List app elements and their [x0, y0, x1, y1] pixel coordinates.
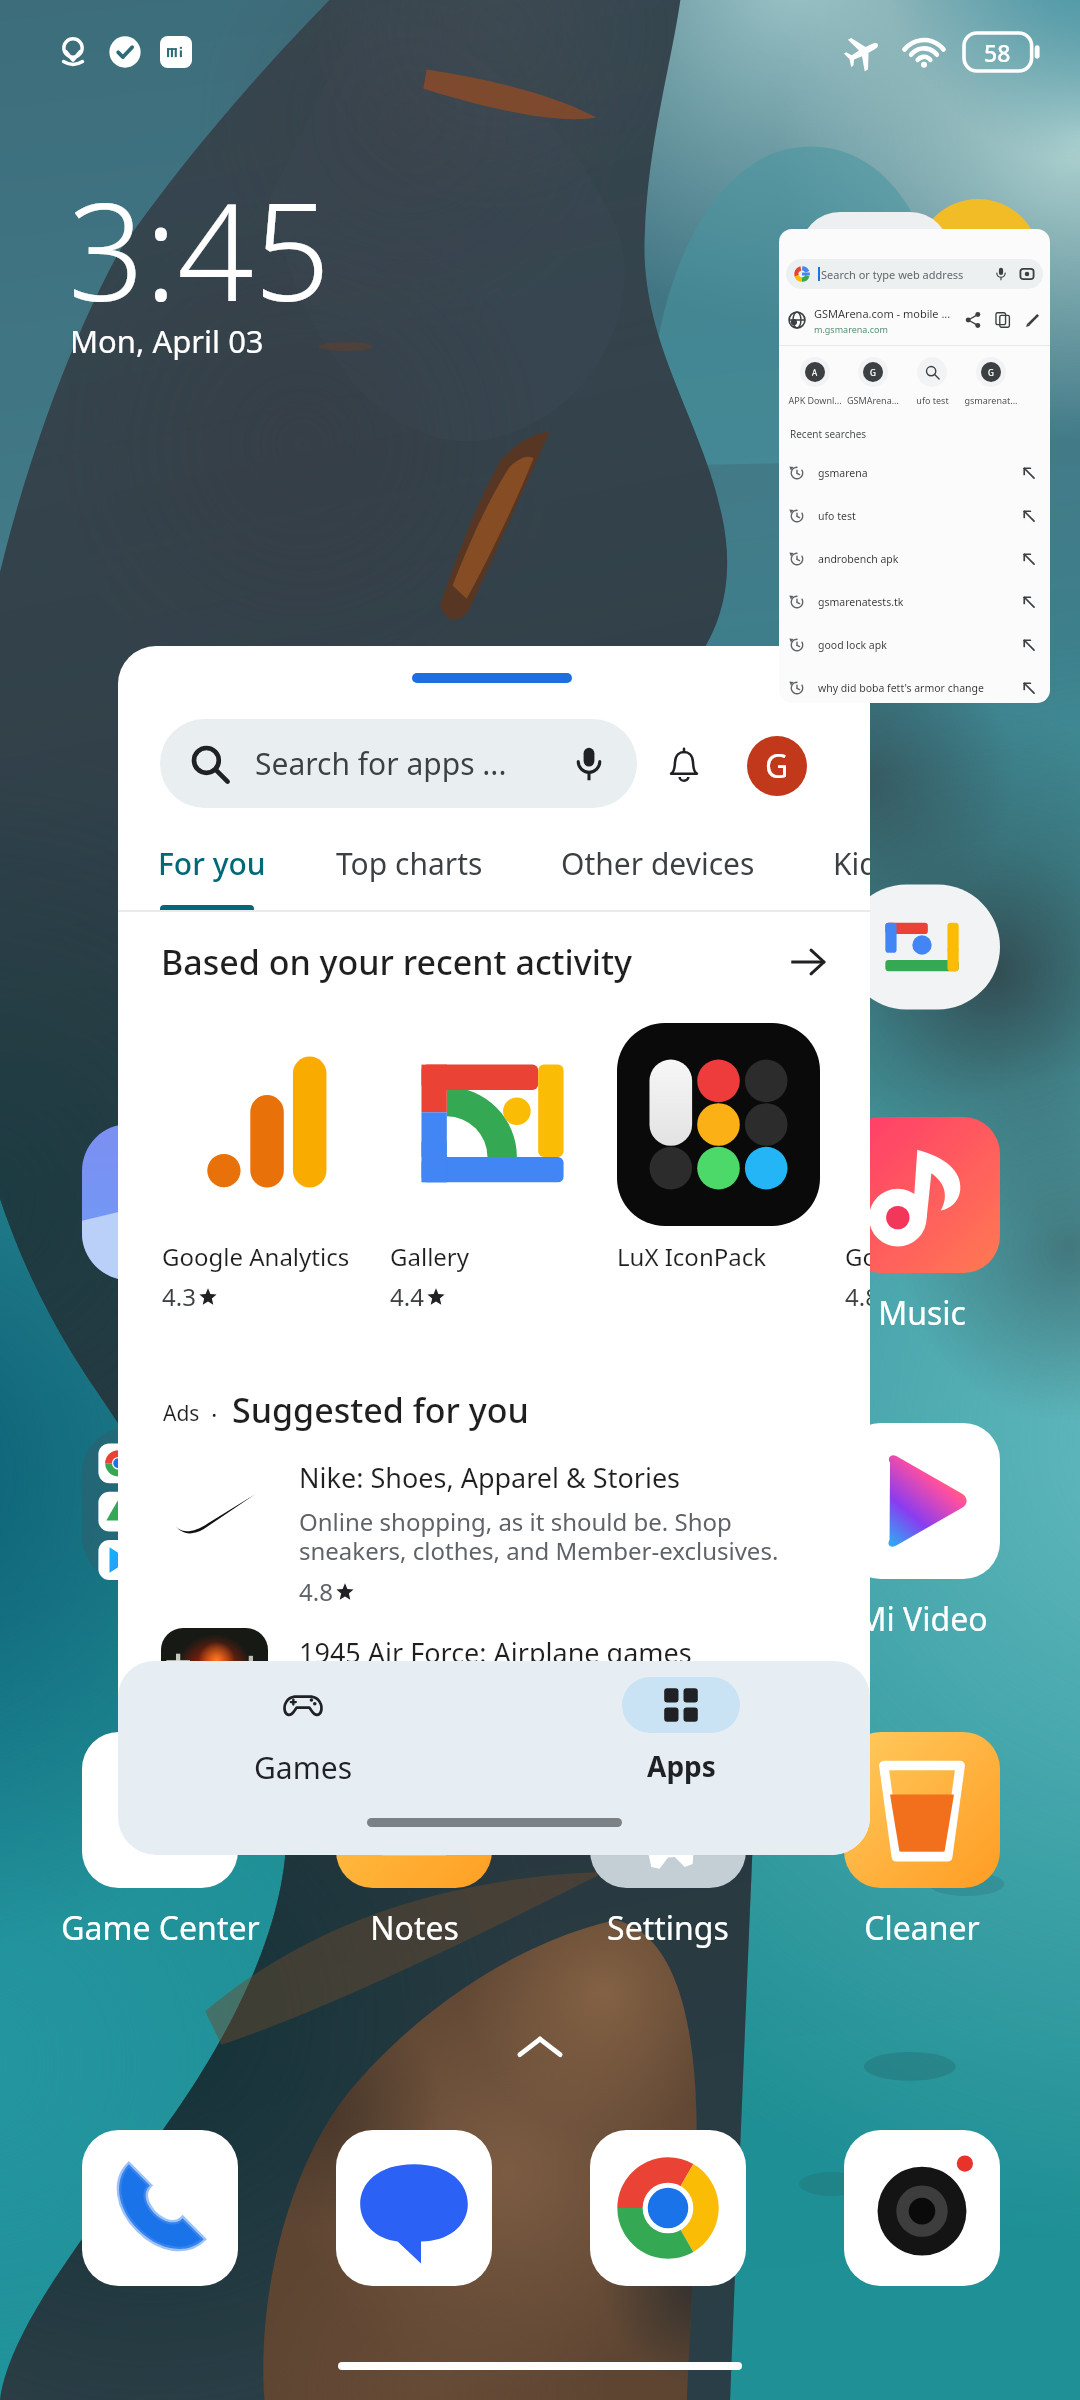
staticText: G — [765, 744, 789, 788]
staticText: gsmarenatests.tk — [818, 595, 904, 609]
button[interactable]: Share — [965, 312, 981, 328]
staticText: Games — [254, 1747, 353, 1788]
button[interactable]: Nike: Shoes, Apparel & Stories — [161, 1459, 827, 1608]
staticText: Mi Video — [857, 1597, 988, 1641]
staticText: G — [988, 367, 994, 378]
button[interactable]: Game Center — [45, 1732, 275, 1950]
staticText: Search or type web address — [821, 267, 964, 282]
button[interactable]: Edit — [1025, 312, 1041, 328]
staticText: good lock apk — [818, 638, 887, 652]
staticText: Ads — [163, 1399, 200, 1428]
button[interactable]: Cleaner — [807, 1732, 1037, 1950]
button[interactable]: G — [842, 357, 904, 406]
staticText: Recent searches — [790, 427, 867, 441]
staticText: Google Analytics — [162, 1240, 350, 1273]
staticText: Top charts — [336, 843, 483, 884]
button[interactable]: Search for apps ... — [160, 719, 637, 808]
button[interactable]: Based on your recent activity — [161, 934, 827, 990]
staticText: G — [870, 367, 876, 378]
staticText: Notes — [370, 1906, 459, 1950]
button[interactable]: gsmarena — [789, 451, 1036, 494]
staticText: Nike: Shoes, Apparel & Stories — [299, 1459, 681, 1496]
button[interactable]: Go — [845, 1023, 870, 1313]
button[interactable]: Gallery — [390, 1023, 593, 1313]
staticText: why did boba fett's armor change — [818, 681, 984, 695]
button[interactable]: LuX IconPack — [617, 1023, 820, 1273]
staticText: 3:45 — [68, 158, 331, 341]
staticText: Music — [878, 1291, 966, 1335]
button[interactable] — [45, 1427, 275, 1583]
staticText: GSMArena.com - mobile ... — [814, 306, 951, 321]
button[interactable]: App — [916, 199, 1040, 323]
staticText: 4.4 — [390, 1280, 424, 1313]
staticText: For you — [158, 843, 266, 884]
button[interactable] — [844, 2130, 1000, 2286]
button[interactable]: Account — [747, 736, 807, 796]
button[interactable]: Copy link — [995, 312, 1011, 328]
button[interactable]: gsmarenatests.tk — [789, 580, 1036, 623]
button[interactable]: Kid — [819, 823, 870, 903]
staticText: gsmarena — [818, 466, 868, 480]
button[interactable]: Google Analytics — [162, 1023, 365, 1313]
button[interactable]: good lock apk — [789, 623, 1036, 666]
button[interactable]: why did boba fett's armor change — [789, 666, 1036, 703]
button[interactable]: Games — [213, 1677, 393, 1788]
button[interactable] — [45, 1124, 275, 1280]
staticText: m.gsmarena.com — [814, 323, 888, 335]
staticText: 4.3 — [162, 1280, 196, 1313]
staticText: androbench apk — [818, 552, 899, 566]
staticText: 1945 Air Force: Airplane games — [299, 1634, 692, 1671]
button[interactable]: Notifications — [666, 747, 702, 783]
staticText: A — [812, 367, 818, 378]
staticText: APK Downl... — [788, 394, 842, 406]
button[interactable] — [590, 2130, 746, 2286]
staticText: Online shopping, as it should be. Shop s… — [299, 1505, 779, 1567]
staticText: Go — [845, 1240, 870, 1273]
staticText: gsmarenat... — [964, 394, 1018, 406]
button[interactable] — [336, 2130, 492, 2286]
button[interactable]: Music — [807, 1117, 1037, 1335]
staticText: Other devices — [561, 843, 755, 884]
button[interactable]: Settings — [553, 1732, 783, 1950]
staticText: ufo test — [916, 394, 949, 406]
button[interactable]: Top charts — [322, 823, 497, 903]
staticText: · — [211, 1398, 218, 1431]
button[interactable]: A — [784, 357, 846, 406]
staticText: Based on your recent activity — [161, 939, 632, 985]
staticText: Suggested for you — [232, 1387, 529, 1433]
staticText: Settings — [607, 1906, 729, 1950]
staticText: 58 — [984, 37, 1011, 68]
staticText: Apps — [647, 1747, 716, 1785]
staticText: Game Center — [61, 1906, 260, 1950]
staticText: Search for apps ... — [255, 743, 507, 784]
button[interactable]: Mi Video — [807, 1423, 1037, 1641]
staticText: 4.8 — [845, 1280, 870, 1313]
button[interactable]: ufo test — [789, 494, 1036, 537]
staticText: GSMArena... — [847, 394, 899, 406]
button[interactable]: G — [960, 357, 1022, 406]
button[interactable]: Notes — [299, 1732, 529, 1950]
button[interactable]: androbench apk — [789, 537, 1036, 580]
button[interactable] — [807, 869, 1037, 1025]
staticText: Kid — [833, 843, 870, 884]
button[interactable]: GSMArena.com - mobile ... — [788, 296, 1041, 344]
button[interactable]: Apps — [591, 1677, 771, 1785]
button[interactable]: ufo test — [901, 357, 963, 406]
staticText: LuX IconPack — [617, 1240, 767, 1273]
button[interactable]: Other devices — [547, 823, 769, 903]
staticText: 4.8 — [299, 1575, 333, 1608]
button[interactable]: Search or type web address — [786, 259, 1043, 289]
button[interactable]: App — [800, 212, 950, 362]
staticText: Mon, April 03 — [70, 320, 264, 362]
staticText: Cleaner — [864, 1906, 980, 1950]
button[interactable] — [82, 2130, 238, 2286]
staticText: ufo test — [818, 509, 856, 523]
staticText: Gallery — [390, 1240, 470, 1273]
button[interactable]: For you — [144, 823, 280, 903]
